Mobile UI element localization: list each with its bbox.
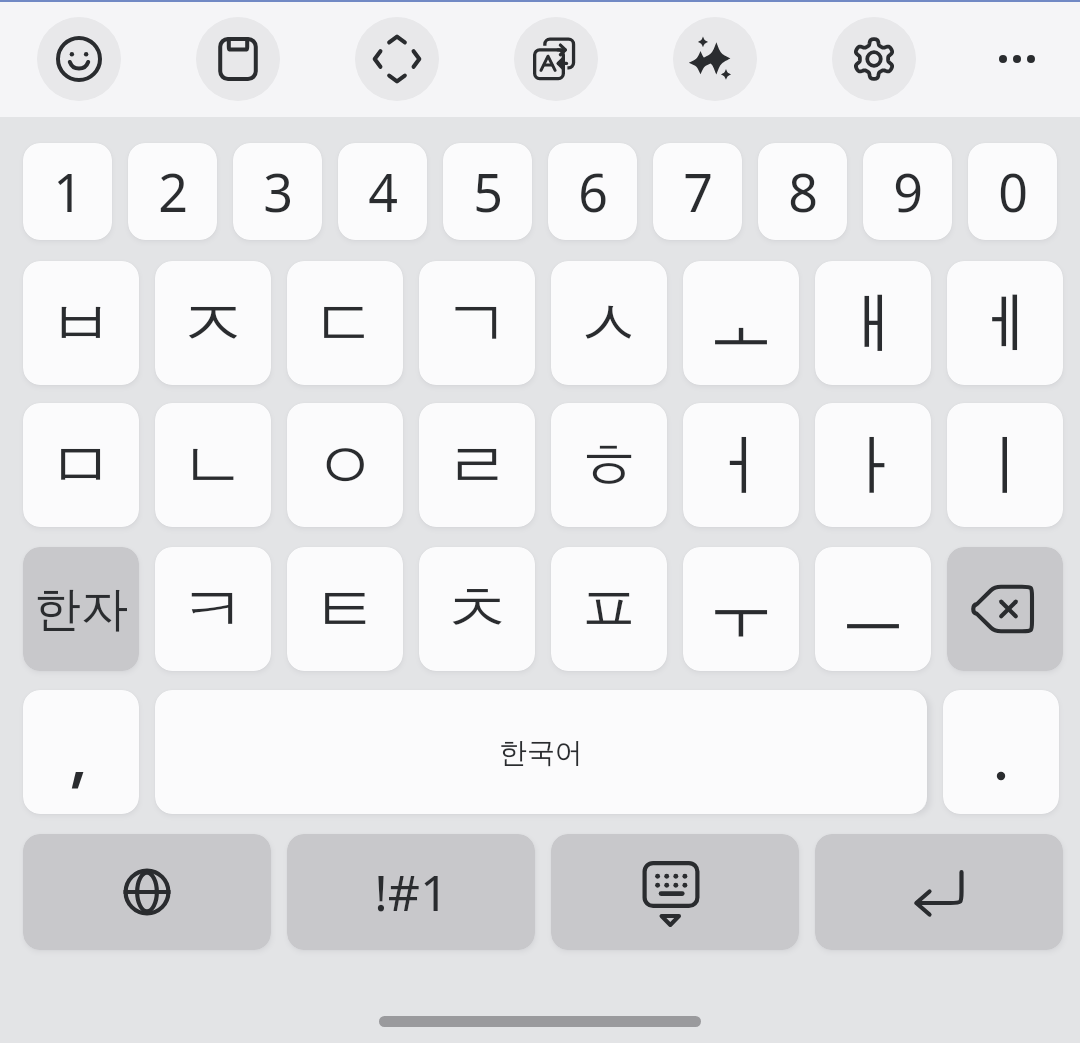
button[interactable]: ㅐ (815, 261, 931, 385)
button[interactable]: 9 (863, 143, 952, 240)
staticText: ㅏ (840, 424, 906, 507)
button[interactable]: Emoji (37, 17, 121, 101)
button[interactable]: ㅇ (287, 403, 403, 527)
button[interactable] (943, 690, 1059, 814)
button[interactable]: ㅓ (683, 403, 799, 527)
staticText: ㅅ (576, 282, 642, 365)
staticText: !#1 (374, 858, 449, 926)
staticText: 3 (263, 156, 293, 227)
button[interactable]: Writing assist (673, 17, 757, 101)
button[interactable]: ㅁ (23, 403, 139, 527)
button[interactable]: ㅊ (419, 547, 535, 671)
button[interactable]: ㅣ (947, 403, 1063, 527)
button[interactable]: ㄴ (155, 403, 271, 527)
button[interactable]: 5 (443, 143, 532, 240)
button[interactable]: 4 (338, 143, 427, 240)
button[interactable]: ㅏ (815, 403, 931, 527)
button[interactable]: 7 (653, 143, 742, 240)
staticText: 4 (368, 156, 398, 227)
button[interactable]: Translate (514, 17, 598, 101)
staticText: 한자 (34, 580, 128, 639)
button[interactable]: 2 (128, 143, 217, 240)
button[interactable]: ㅅ (551, 261, 667, 385)
button[interactable]: ㄷ (287, 261, 403, 385)
button[interactable]: 8 (758, 143, 847, 240)
staticText: ㅁ (48, 424, 114, 507)
staticText: ㅓ (708, 424, 774, 507)
staticText: 5 (473, 156, 503, 227)
button[interactable]: ㅗ (683, 261, 799, 385)
staticText: ㅡ (840, 568, 906, 651)
button[interactable]: Enter (815, 834, 1063, 950)
button[interactable]: ㅌ (287, 547, 403, 671)
button[interactable] (23, 690, 139, 814)
button[interactable]: Move keyboard (355, 17, 439, 101)
button[interactable]: ㄱ (419, 261, 535, 385)
button[interactable]: Backspace (947, 547, 1063, 671)
button[interactable]: 한국어 (155, 690, 927, 814)
staticText: ㅊ (444, 568, 510, 651)
button[interactable]: Clipboard (196, 17, 280, 101)
staticText: ㅈ (180, 282, 246, 365)
button[interactable]: !#1 (287, 834, 535, 950)
button[interactable]: 1 (23, 143, 112, 240)
staticText: ㄹ (444, 424, 510, 507)
button[interactable]: 0 (968, 143, 1057, 240)
button[interactable]: ㅡ (815, 547, 931, 671)
staticText: ㅎ (576, 424, 642, 507)
button[interactable]: ㅜ (683, 547, 799, 671)
button[interactable]: Change language (23, 834, 271, 950)
button[interactable]: 한자 (23, 547, 139, 671)
staticText: ㄷ (312, 282, 378, 365)
button[interactable]: Hide keyboard (551, 834, 799, 950)
staticText: 2 (158, 156, 188, 227)
staticText: ㅔ (972, 282, 1038, 365)
staticText: 8 (788, 156, 818, 227)
button[interactable]: 3 (233, 143, 322, 240)
staticText: 한국어 (499, 735, 583, 770)
button[interactable]: ㅂ (23, 261, 139, 385)
staticText: ㅂ (48, 282, 114, 365)
staticText: ㅇ (312, 424, 378, 507)
staticText: ㄱ (444, 282, 510, 365)
button[interactable]: ㄹ (419, 403, 535, 527)
staticText: ㄴ (180, 424, 246, 507)
button[interactable]: ㅔ (947, 261, 1063, 385)
staticText: ㅋ (180, 568, 246, 651)
staticText: 0 (998, 156, 1028, 227)
staticText: 6 (578, 156, 608, 227)
button[interactable]: ㅎ (551, 403, 667, 527)
button[interactable]: More options (975, 17, 1059, 101)
staticText: ㅜ (708, 568, 774, 651)
staticText: 7 (683, 156, 713, 227)
staticText: ㅗ (708, 282, 774, 365)
button[interactable]: 6 (548, 143, 637, 240)
button[interactable]: Settings (832, 17, 916, 101)
staticText: 9 (893, 156, 923, 227)
button[interactable]: ㅈ (155, 261, 271, 385)
staticText: ㅐ (840, 282, 906, 365)
staticText: ㅍ (576, 568, 642, 651)
button[interactable]: ㅋ (155, 547, 271, 671)
staticText: ㅌ (312, 568, 378, 651)
button[interactable]: ㅍ (551, 547, 667, 671)
staticText: ㅣ (972, 424, 1038, 507)
staticText: 1 (53, 156, 83, 227)
